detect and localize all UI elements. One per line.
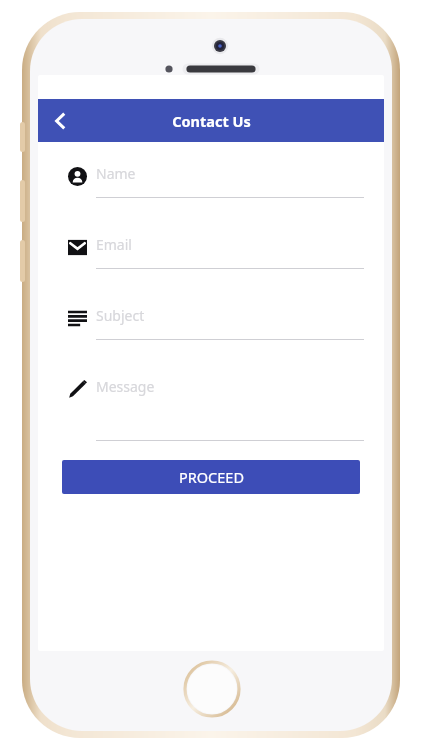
button[interactable]: PROCEED — [62, 460, 360, 494]
other: Subject — [68, 309, 87, 328]
button[interactable]: Message — [58, 376, 364, 441]
staticText: Email — [96, 235, 132, 254]
other: Name — [68, 167, 87, 186]
other: Email — [68, 238, 87, 257]
button[interactable]: Email — [58, 234, 364, 269]
button[interactable]: Subject — [58, 305, 364, 340]
other: Message — [68, 380, 87, 399]
button[interactable]: Name — [58, 163, 364, 198]
staticText: Subject — [96, 306, 145, 325]
button[interactable]: Back — [38, 99, 82, 142]
staticText: Name — [96, 164, 136, 183]
staticText: PROCEED — [179, 467, 244, 487]
staticText: Message — [96, 377, 155, 396]
staticText: Contact Us — [172, 111, 251, 131]
